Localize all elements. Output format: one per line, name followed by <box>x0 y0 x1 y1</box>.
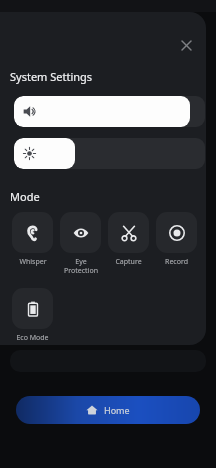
button[interactable] <box>60 212 101 253</box>
button[interactable]: Slider <box>14 138 205 169</box>
staticText: Whisper <box>19 257 47 267</box>
staticText: Eco Mode <box>16 333 49 343</box>
button[interactable] <box>156 212 197 253</box>
button[interactable]: Close <box>175 34 197 56</box>
button[interactable] <box>12 212 53 253</box>
button[interactable] <box>12 288 53 329</box>
button[interactable] <box>108 212 149 253</box>
staticText: Home <box>104 404 130 416</box>
staticText: Capture <box>115 257 142 267</box>
button[interactable]: Slider <box>14 96 205 127</box>
staticText: Eye Protection <box>64 257 98 275</box>
button[interactable]: Home <box>16 396 200 424</box>
staticText: Mode <box>10 189 40 204</box>
staticText: Record <box>165 257 188 267</box>
staticText: System Settings <box>10 69 93 84</box>
